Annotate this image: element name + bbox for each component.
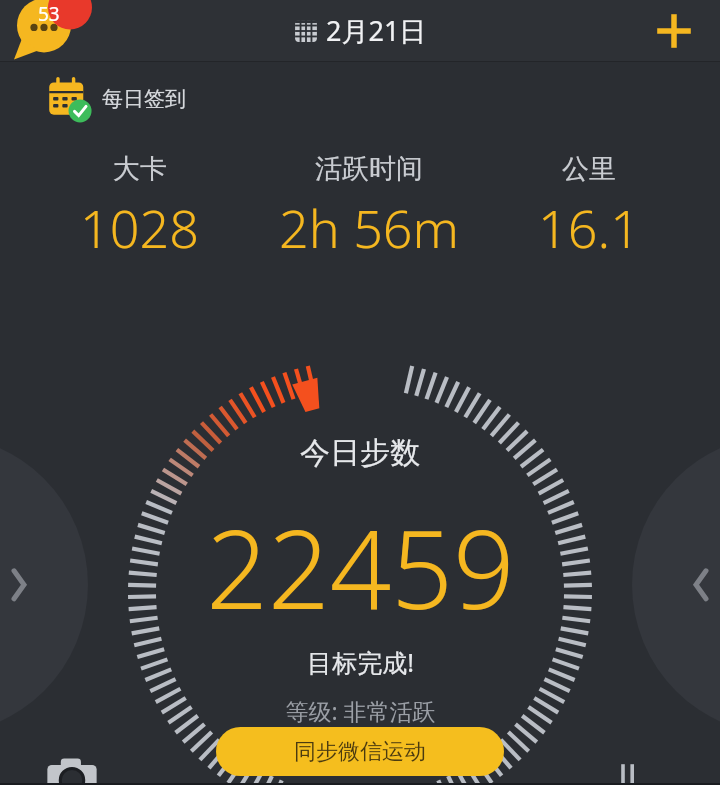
staticText: 16.1 [538,192,640,263]
button[interactable]: 大卡 [80,152,199,263]
button[interactable]: Pause [608,753,648,785]
button[interactable]: Camera [44,753,100,785]
staticText: 2h 56m [279,192,459,263]
staticText: 大卡 [113,152,167,186]
staticText: 活跃时间 [315,152,423,186]
button[interactable]: 活跃时间 [279,152,459,263]
staticText: 目标完成! [307,645,414,679]
button[interactable]: 公里 [538,152,640,263]
button[interactable]: 同步微信运动 [216,727,504,776]
staticText: 等级: 非常活跃 [285,695,436,726]
staticText: 22459 [206,494,515,641]
staticText: 1028 [80,192,199,263]
staticText: 2月21日 [326,12,427,49]
staticText: 今日步数 [300,434,420,472]
staticText: 同步微信运动 [294,738,426,766]
staticText: 公里 [562,152,616,186]
button[interactable]: Add [650,7,698,55]
button[interactable]: 每日签到 [46,76,186,122]
button[interactable]: Messages [8,3,88,59]
staticText: 53 [38,1,60,27]
button[interactable]: 2月21日 [293,12,427,49]
staticText: 每日签到 [102,86,186,112]
